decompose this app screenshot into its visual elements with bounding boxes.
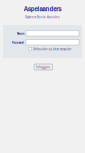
staticText: Inloggen <box>36 65 50 69</box>
staticText: Aspelaanders <box>24 3 61 14</box>
staticText: Systeem Bonte Aranden <box>25 15 60 19</box>
staticText: Password <box>12 40 24 45</box>
button[interactable]: Inloggen <box>34 64 52 70</box>
button[interactable]: Onthouden op deze computer <box>29 46 79 51</box>
staticText: Naam <box>17 31 24 36</box>
staticText: Onthouden op deze computer <box>33 47 72 51</box>
